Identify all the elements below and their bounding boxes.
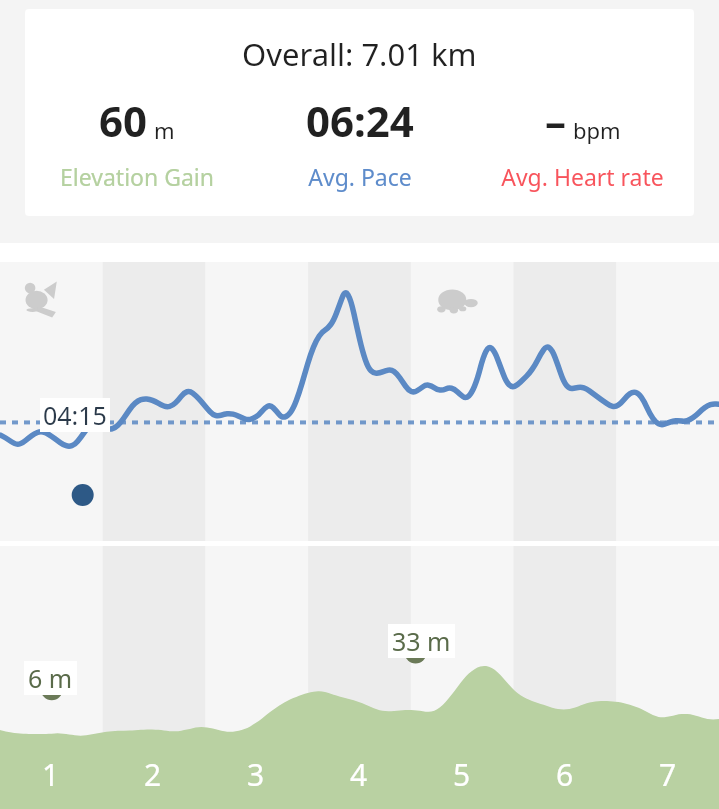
staticText: – bbox=[545, 92, 567, 149]
other: Slowest pace bbox=[432, 276, 484, 328]
staticText: Avg. Pace bbox=[308, 161, 412, 192]
button[interactable]: Fastest pace bbox=[0, 262, 719, 541]
staticText: 33 m bbox=[392, 624, 451, 658]
button[interactable]: 06:24 bbox=[248, 92, 471, 192]
staticText: 06:24 bbox=[306, 92, 414, 149]
other: Fastest pace bbox=[20, 276, 66, 322]
staticText: 6 m bbox=[28, 661, 73, 695]
staticText: Overall: 7.01 km bbox=[242, 33, 477, 75]
staticText: Elevation Gain bbox=[60, 161, 214, 192]
staticText: 6 bbox=[556, 754, 574, 795]
staticText: 3 bbox=[247, 754, 265, 795]
button[interactable]: Overall: 7.01 km bbox=[25, 9, 694, 216]
button[interactable]: 60 bbox=[25, 92, 248, 192]
staticText: 5 bbox=[453, 754, 471, 795]
staticText: m bbox=[154, 115, 175, 145]
staticText: bpm bbox=[573, 115, 621, 145]
staticText: 7 bbox=[659, 754, 677, 795]
staticText: 4 bbox=[350, 754, 368, 795]
staticText: 60 bbox=[99, 92, 148, 149]
staticText: 2 bbox=[144, 754, 162, 795]
staticText: 1 bbox=[42, 754, 60, 795]
staticText: Avg. Heart rate bbox=[501, 161, 664, 192]
staticText: 04:15 bbox=[43, 398, 107, 432]
button[interactable]: – bbox=[471, 92, 694, 192]
button[interactable]: 6 m bbox=[0, 546, 719, 809]
